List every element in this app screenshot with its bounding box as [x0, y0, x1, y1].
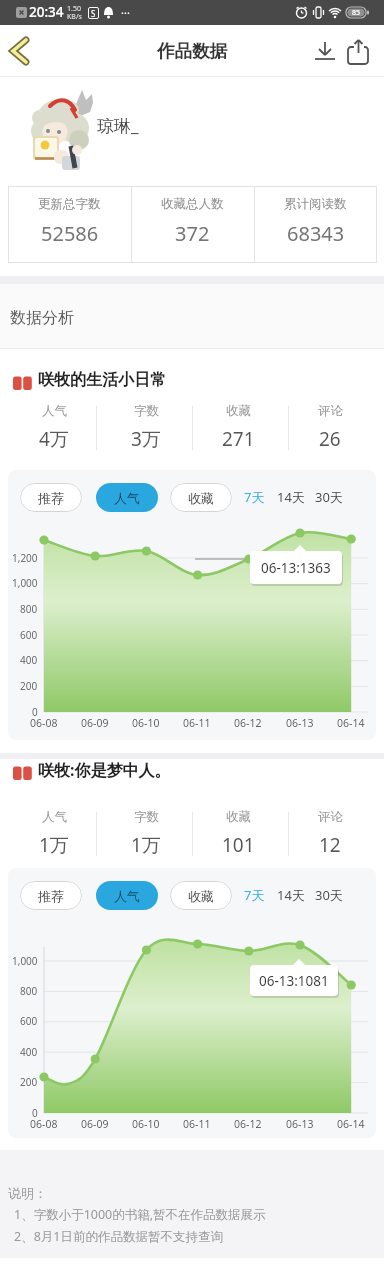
staticText: 0 — [32, 705, 38, 719]
staticText: 68343 — [287, 220, 345, 247]
button[interactable] — [310, 39, 340, 65]
staticText: 06-10 — [132, 1117, 160, 1131]
staticText: S — [91, 8, 96, 19]
button[interactable] — [344, 38, 374, 68]
staticText: 4万 — [39, 426, 69, 452]
staticText: 372 — [175, 220, 210, 247]
button[interactable]: 收藏 — [170, 881, 232, 910]
staticText: 271 — [222, 426, 255, 452]
staticText: 作品数据 — [157, 40, 227, 62]
staticText: 字数 — [134, 403, 159, 419]
staticText: 1、字数小于1000的书籍,暂不在作品数据展示 — [14, 1206, 266, 1223]
staticText: 推荐 — [38, 888, 64, 904]
staticText: 累计阅读数 — [284, 196, 347, 212]
button[interactable]: 收藏 — [170, 483, 232, 512]
staticText: 琼琳_ — [97, 114, 139, 137]
button[interactable]: 推荐 — [20, 483, 82, 512]
staticText: 30天 — [315, 886, 343, 904]
staticText: 评论 — [318, 809, 343, 825]
staticText: 14天 — [277, 488, 305, 506]
staticText: 600 — [20, 628, 38, 642]
staticText: 3万 — [131, 426, 161, 452]
staticText: 06-08 — [30, 1117, 58, 1131]
staticText: 1.50 — [67, 4, 81, 13]
staticText: 06-11 — [183, 1117, 211, 1131]
staticText: 收藏 — [226, 403, 251, 419]
staticText: 06-10 — [132, 716, 160, 730]
staticText: 52586 — [41, 220, 99, 247]
staticText: 收藏 — [188, 888, 214, 904]
staticText: 06-13 — [286, 716, 314, 730]
staticText: 200 — [20, 1075, 38, 1089]
staticText: 20:34 — [29, 3, 64, 21]
staticText: 06-12 — [234, 1117, 262, 1131]
button[interactable]: 推荐 — [20, 881, 82, 910]
staticText: 200 — [20, 679, 38, 693]
staticText: 06-11 — [183, 716, 211, 730]
staticText: 800 — [20, 984, 38, 998]
staticText: 800 — [20, 602, 38, 616]
staticText: 12 — [319, 832, 341, 858]
staticText: 人气 — [42, 403, 67, 419]
button[interactable]: 人气 — [96, 483, 158, 512]
staticText: 1万 — [131, 832, 161, 858]
staticText: 14天 — [277, 886, 305, 904]
staticText: 字数 — [134, 809, 159, 825]
staticText: 06-13:1081 — [259, 972, 329, 990]
staticText: 数据分析 — [10, 308, 74, 328]
staticText: 06-14 — [337, 1117, 365, 1131]
staticText: 人气 — [114, 888, 140, 904]
staticText: 人气 — [114, 490, 140, 506]
button[interactable]: 人气 — [96, 881, 158, 910]
staticText: 7天 — [244, 886, 265, 904]
staticText: 人气 — [42, 809, 67, 825]
staticText: 400 — [20, 1045, 38, 1059]
staticText: 26 — [319, 426, 341, 452]
staticText: 400 — [20, 653, 38, 667]
staticText: 评论 — [318, 403, 343, 419]
staticText: 30天 — [315, 488, 343, 506]
staticText: 06-09 — [81, 716, 109, 730]
staticText: KB/s — [67, 12, 82, 21]
staticText: 更新总字数 — [38, 196, 101, 212]
staticText: 收藏总人数 — [161, 196, 224, 212]
staticText: 06-12 — [234, 716, 262, 730]
staticText: 收藏 — [226, 809, 251, 825]
staticText: 06-13 — [286, 1117, 314, 1131]
staticText: 600 — [20, 1014, 38, 1028]
staticText: ... — [121, 2, 130, 17]
staticText: 85 — [352, 8, 361, 18]
staticText: 7天 — [244, 488, 265, 506]
staticText: 0 — [32, 1106, 38, 1120]
staticText: 06-14 — [337, 716, 365, 730]
staticText: 推荐 — [38, 490, 64, 506]
staticText: 06-13:1363 — [261, 559, 331, 577]
staticText: 咲牧:你是梦中人。 — [38, 759, 171, 781]
staticText: 1,000 — [12, 954, 38, 968]
staticText: 说明： — [8, 1185, 47, 1201]
staticText: 06-08 — [30, 716, 58, 730]
staticText: 101 — [222, 832, 255, 858]
button[interactable] — [4, 32, 38, 70]
staticText: 1,000 — [12, 576, 38, 590]
staticText: 2、8月1日前的作品数据暂不支持查询 — [14, 1228, 223, 1245]
staticText: 咲牧的生活小日常 — [38, 370, 166, 390]
staticText: 1,200 — [12, 551, 38, 565]
staticText: 1万 — [39, 832, 69, 858]
staticText: 收藏 — [188, 490, 214, 506]
staticText: 06-09 — [81, 1117, 109, 1131]
